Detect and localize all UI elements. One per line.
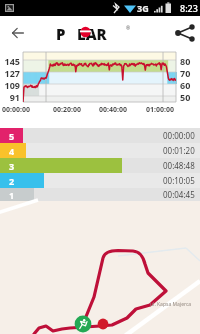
staticText: 109 xyxy=(0,79,20,91)
button[interactable]: 3 xyxy=(0,158,200,173)
staticText: P xyxy=(56,24,66,44)
staticText: 01:00:00 xyxy=(146,105,174,115)
button[interactable]: 1 xyxy=(0,188,200,201)
staticText: 2 xyxy=(9,175,15,187)
button[interactable]: 2 xyxy=(0,173,200,188)
staticText: 00:48:48 xyxy=(163,160,195,171)
staticText: 00:10:05 xyxy=(163,175,195,186)
staticText: 00:00:00 xyxy=(2,105,30,115)
staticText: 91 xyxy=(0,91,20,103)
staticText: 1 xyxy=(9,189,15,201)
staticText: 00:01:20 xyxy=(163,145,195,156)
staticText: 00:00:00 xyxy=(163,130,195,141)
staticText: 127 xyxy=(0,67,20,79)
staticText: 60 xyxy=(180,79,191,91)
staticText: 00:20:00 xyxy=(53,105,81,115)
button[interactable]: Share xyxy=(170,16,200,46)
staticText: 50 xyxy=(180,91,191,103)
button[interactable]: 4 xyxy=(0,143,200,158)
staticText: ® xyxy=(126,25,131,32)
staticText: 145 xyxy=(0,55,20,67)
staticText: 70 xyxy=(180,67,191,79)
staticText: 00:04:45 xyxy=(163,189,195,200)
button[interactable]: Back xyxy=(0,16,30,46)
staticText: 5 xyxy=(9,130,15,142)
button[interactable]: 5 xyxy=(0,128,200,143)
staticText: LAR xyxy=(77,24,107,44)
staticText: 3G xyxy=(137,2,149,14)
staticText: 4 xyxy=(9,145,15,157)
staticText: 8:23 xyxy=(180,2,198,14)
staticText: ul. Kapsa Majerca xyxy=(150,301,192,308)
staticText: 3 xyxy=(9,160,15,172)
staticText: 80 xyxy=(180,55,191,67)
staticText: 00:40:00 xyxy=(99,105,127,115)
button[interactable]: ul. Kapsa Majerca xyxy=(0,201,200,334)
